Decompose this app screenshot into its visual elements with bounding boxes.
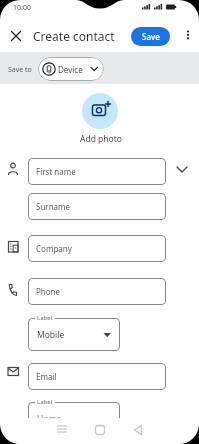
button[interactable]: Device (38, 57, 104, 81)
staticText: Device (58, 64, 83, 75)
button[interactable] (90, 420, 110, 440)
staticText: Add photo (80, 133, 122, 145)
staticText: Create contact (33, 28, 115, 44)
staticText: Label (37, 314, 53, 322)
staticText: Phone (36, 286, 61, 297)
staticText: Company (36, 243, 72, 254)
button[interactable]: Email (28, 363, 166, 390)
staticText: Home (37, 413, 62, 425)
button[interactable] (128, 420, 148, 440)
staticText: Surname (36, 201, 71, 212)
staticText: Save (142, 31, 160, 42)
button[interactable]: First name (28, 158, 166, 185)
button[interactable]: Phone (28, 278, 166, 305)
staticText: Mobile (37, 329, 65, 341)
button[interactable]: Save (131, 27, 170, 46)
staticText: Email (36, 371, 57, 382)
button[interactable]: Company (28, 235, 166, 262)
button[interactable] (181, 28, 195, 42)
button[interactable] (82, 93, 118, 129)
staticText: First name (36, 166, 76, 177)
button[interactable]: Mobile (28, 318, 120, 351)
button[interactable] (52, 420, 72, 440)
staticText: Label (37, 398, 53, 406)
staticText: Save to (8, 65, 32, 75)
button[interactable]: Surname (28, 193, 166, 220)
button[interactable] (7, 27, 25, 45)
staticText: 10:00 (13, 3, 31, 13)
